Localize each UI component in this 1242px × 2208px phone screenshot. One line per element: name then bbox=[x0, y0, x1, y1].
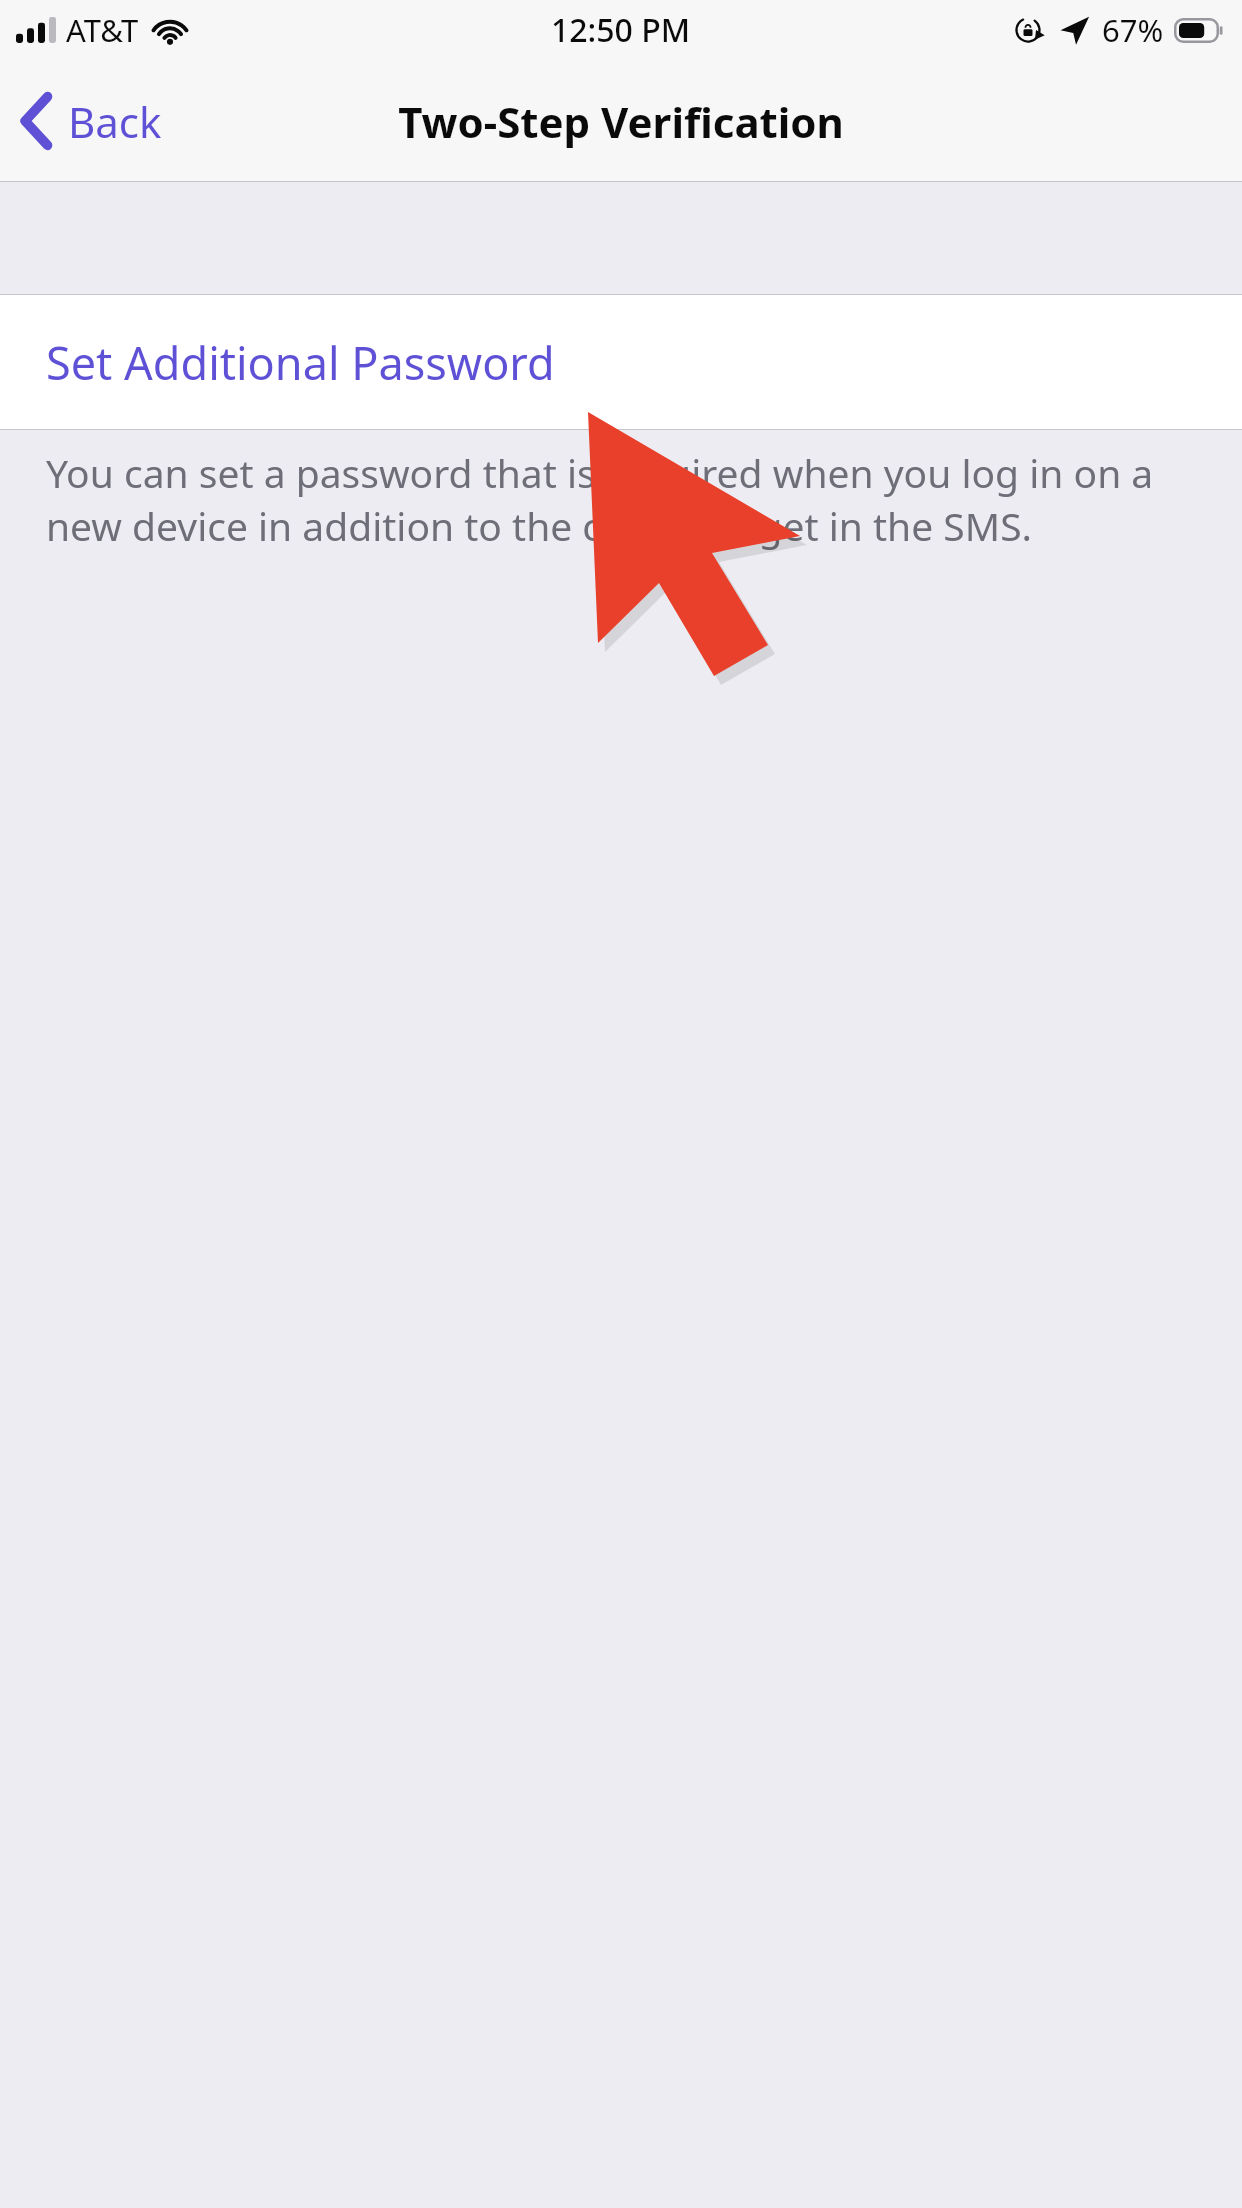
staticText: 67% bbox=[1102, 9, 1164, 51]
staticText: Two-Step Verification bbox=[398, 93, 844, 150]
staticText: 12:50 PM bbox=[551, 8, 691, 52]
staticText: You can set a password that is required … bbox=[46, 446, 1194, 552]
button[interactable]: Back bbox=[0, 60, 178, 182]
staticText: Set Additional Password bbox=[46, 332, 555, 393]
button[interactable]: Set Additional Password bbox=[0, 295, 1242, 429]
staticText: Back bbox=[68, 93, 162, 150]
other: Back bbox=[20, 92, 52, 150]
staticText: AT&T bbox=[66, 9, 139, 51]
